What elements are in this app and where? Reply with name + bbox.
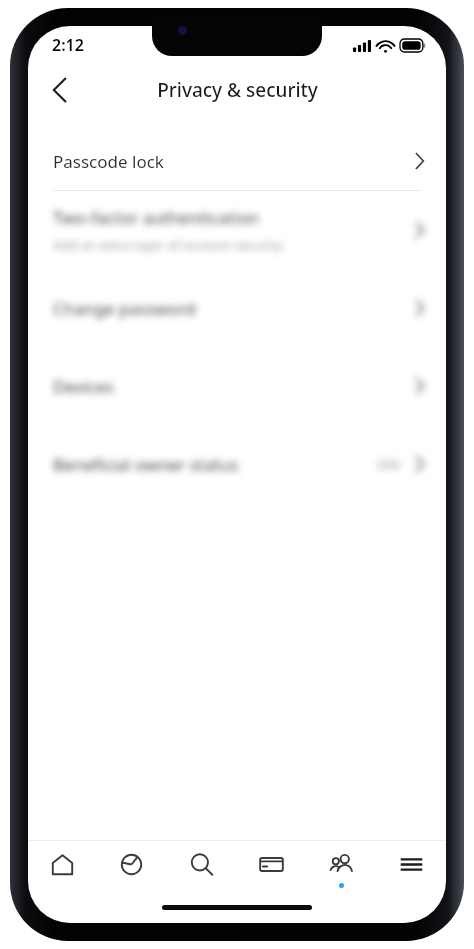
- button[interactable]: Devices: [28, 347, 446, 425]
- button[interactable]: Beneficial owner status: [28, 425, 446, 503]
- button[interactable]: Home: [28, 841, 97, 897]
- staticText: Two-factor authentication: [53, 206, 259, 229]
- staticText: Privacy & security: [157, 77, 318, 103]
- button[interactable]: Cards: [236, 841, 306, 897]
- staticText: 2:12: [52, 34, 84, 56]
- button[interactable]: Change password: [28, 269, 446, 347]
- staticText: Passcode lock: [53, 150, 164, 173]
- button[interactable]: Insights: [97, 841, 166, 897]
- button[interactable]: Menu: [376, 841, 446, 897]
- staticText: ON: [377, 454, 401, 474]
- button[interactable]: Contacts: [306, 841, 376, 897]
- button[interactable]: Two-factor authentication: [28, 191, 446, 269]
- staticText: Change password: [53, 297, 196, 320]
- staticText: Beneficial owner status: [53, 453, 239, 476]
- button[interactable]: Back: [38, 68, 82, 112]
- button[interactable]: Passcode lock: [28, 132, 446, 190]
- staticText: Add an extra layer of account security: [53, 236, 283, 254]
- button[interactable]: Search: [166, 841, 236, 897]
- staticText: Devices: [53, 375, 114, 398]
